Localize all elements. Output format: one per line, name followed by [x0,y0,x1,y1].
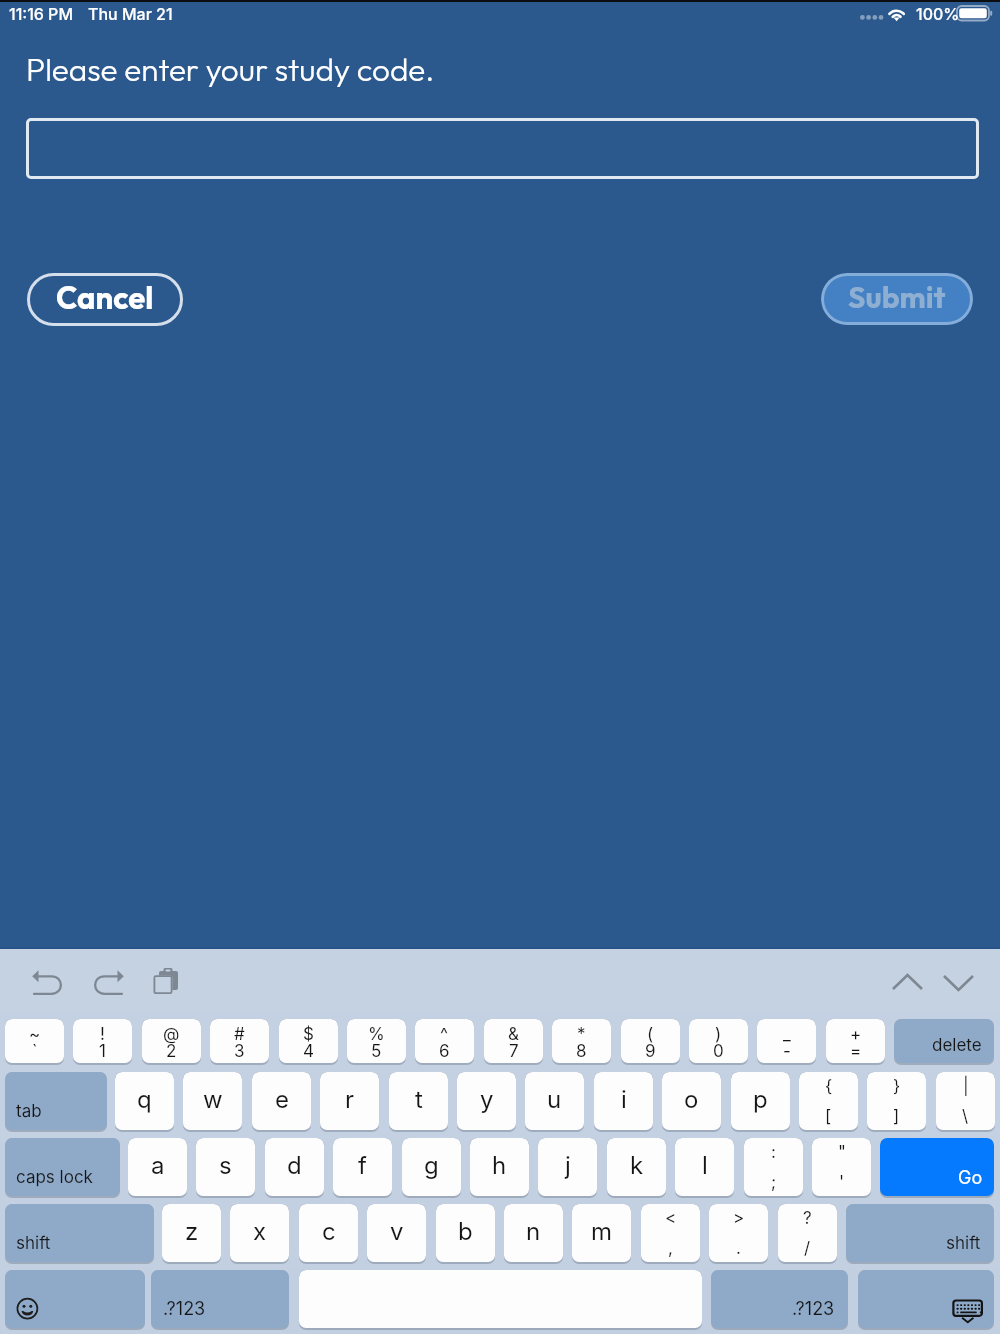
button[interactable]: $ [279,1019,338,1063]
staticText: : [771,1142,776,1163]
button[interactable]: > [709,1204,768,1262]
button[interactable]: < [641,1204,700,1262]
staticText: $ [303,1024,314,1045]
staticText: 5 [371,1041,382,1062]
button[interactable]: shift [846,1204,994,1262]
button[interactable]: .?123 [151,1270,289,1328]
button[interactable]: q [115,1072,174,1130]
staticText: # [234,1024,245,1045]
button[interactable]: w [183,1072,242,1130]
button[interactable]: Paste [148,961,192,1005]
staticText: ` [32,1041,38,1062]
button[interactable]: ^ [415,1019,474,1063]
staticText: > [733,1208,745,1229]
staticText: 11:16 PM [9,4,73,23]
staticText: / [804,1238,811,1259]
staticText: w [203,1085,223,1114]
button[interactable]: Space [299,1270,702,1328]
staticText: Submit [848,278,946,316]
button[interactable]: shift [5,1204,154,1262]
button[interactable]: Cancel [27,273,183,326]
staticText: f [358,1151,367,1180]
button[interactable]: z [162,1204,221,1262]
button[interactable]: Undo [24,961,72,1005]
button[interactable]: k [607,1138,666,1196]
button[interactable]: v [367,1204,426,1262]
staticText: = [850,1041,862,1062]
button[interactable]: ~ [5,1019,64,1063]
button[interactable]: | [936,1072,995,1130]
button[interactable]: @ [142,1019,201,1063]
button[interactable] [26,118,979,179]
staticText: o [684,1085,699,1114]
button[interactable]: x [230,1204,289,1262]
staticText: < [665,1208,677,1229]
staticText: { [825,1076,833,1097]
button[interactable]: j [538,1138,597,1196]
staticText: + [850,1024,862,1045]
button[interactable]: + [826,1019,885,1063]
button[interactable]: ! [73,1019,132,1063]
button[interactable]: Next field [939,966,977,992]
button[interactable]: & [484,1019,543,1063]
staticText: ] [893,1106,900,1127]
staticText: ) [715,1024,722,1045]
button[interactable]: y [457,1072,516,1130]
button[interactable]: _ [757,1019,816,1063]
button[interactable]: Submit [821,273,973,325]
button[interactable]: t [389,1072,448,1130]
button[interactable]: tab [5,1072,107,1130]
button[interactable]: delete [894,1019,994,1063]
button[interactable]: f [333,1138,392,1196]
button[interactable]: % [347,1019,406,1063]
button[interactable]: r [320,1072,379,1130]
button[interactable]: Emoji [5,1270,145,1328]
staticText: q [137,1085,152,1114]
staticText: k [630,1151,644,1180]
staticText: i [621,1085,627,1114]
staticText: r [345,1085,355,1114]
staticText: delete [932,1035,982,1056]
button[interactable]: .?123 [711,1270,848,1328]
button[interactable]: ) [689,1019,748,1063]
staticText: m [591,1217,613,1246]
button[interactable]: ? [778,1204,837,1262]
staticText: shift [16,1233,51,1254]
staticText: caps lock [16,1167,93,1188]
button[interactable]: h [470,1138,529,1196]
staticText: y [480,1085,494,1114]
button[interactable]: s [196,1138,255,1196]
button[interactable]: Hide keyboard [858,1270,994,1328]
button[interactable]: Previous field [888,966,926,992]
button[interactable]: n [504,1204,563,1262]
button[interactable]: m [572,1204,631,1262]
staticText: u [547,1085,562,1114]
button[interactable]: } [867,1072,926,1130]
button[interactable]: # [210,1019,269,1063]
button[interactable]: { [799,1072,858,1130]
button[interactable]: : [744,1138,803,1196]
staticText: } [893,1076,901,1097]
button[interactable]: u [525,1072,584,1130]
staticText: . [736,1238,741,1259]
button[interactable]: caps lock [5,1138,120,1196]
button[interactable]: Redo [84,961,132,1005]
button[interactable]: d [265,1138,324,1196]
button[interactable]: Go [880,1138,994,1196]
staticText: s [219,1151,232,1180]
button[interactable]: l [675,1138,734,1196]
button[interactable]: g [402,1138,461,1196]
button[interactable]: " [812,1138,871,1196]
button[interactable]: ( [621,1019,680,1063]
button[interactable]: * [552,1019,611,1063]
staticText: % [368,1024,385,1045]
button[interactable]: p [731,1072,790,1130]
button[interactable]: i [594,1072,653,1130]
button[interactable]: o [662,1072,721,1130]
button[interactable]: e [252,1072,311,1130]
staticText: , [668,1238,673,1259]
button[interactable]: b [436,1204,495,1262]
button[interactable]: c [299,1204,358,1262]
button[interactable]: a [128,1138,187,1196]
staticText: ? [803,1208,812,1229]
